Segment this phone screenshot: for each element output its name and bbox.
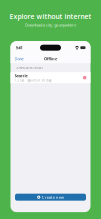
staticText: Download a city, go anywhere (25, 22, 76, 28)
staticText: Explore without internet (9, 12, 91, 21)
staticText: Seattle (14, 73, 27, 78)
button[interactable]: Create new (15, 194, 86, 201)
staticText: DOWNLOADED AREAS (15, 66, 42, 69)
staticText: Create new (42, 194, 64, 200)
button[interactable]: Seattle (10, 72, 90, 83)
staticText: 9:41 (15, 45, 22, 50)
button[interactable]: Done (13, 55, 24, 62)
staticText: 1.2 GB · expires in 30 days (14, 79, 51, 82)
staticText: Offline (44, 56, 57, 61)
staticText: Done (14, 56, 23, 61)
